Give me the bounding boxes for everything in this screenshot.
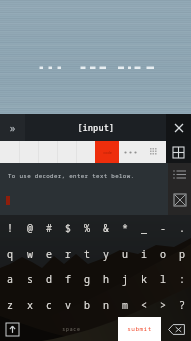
button[interactable]: Dot grid [142, 141, 166, 163]
button[interactable]: w [20, 241, 39, 266]
button[interactable]: _ [134, 215, 153, 241]
button[interactable]: < [134, 292, 153, 317]
staticText: $ [65, 221, 71, 235]
staticText: - [160, 221, 166, 235]
button[interactable]: ! [0, 215, 20, 241]
button[interactable]: submit [118, 317, 161, 341]
staticText: [input] [77, 122, 115, 133]
button[interactable]: - [153, 215, 172, 241]
staticText: p [179, 247, 185, 261]
staticText: ! [7, 221, 13, 235]
button[interactable]: g [77, 266, 96, 292]
button[interactable]: & [96, 215, 115, 241]
staticText: > [160, 298, 166, 312]
button[interactable]: n [96, 292, 115, 317]
staticText: z [7, 298, 13, 312]
staticText: g [84, 272, 90, 286]
staticText: @ [27, 221, 33, 235]
button[interactable]: List [168, 163, 191, 185]
button[interactable]: e [39, 241, 58, 266]
staticText: ? [179, 298, 185, 312]
button[interactable]: r [58, 241, 77, 266]
button[interactable]: More options [119, 141, 142, 163]
button[interactable]: Backspace [161, 317, 191, 341]
staticText: . [179, 221, 185, 235]
staticText: i [141, 247, 147, 261]
button[interactable]: h [96, 266, 115, 292]
button[interactable]: code [95, 141, 119, 163]
button[interactable]: Clear text [168, 185, 191, 215]
staticText: o [160, 247, 166, 261]
button[interactable]: Close [166, 114, 191, 141]
staticText: j [122, 272, 128, 286]
staticText: a [7, 272, 13, 286]
button[interactable]: z [0, 292, 20, 317]
button[interactable]: f [58, 266, 77, 292]
button[interactable]: Expand panel [0, 114, 25, 141]
staticText: < [141, 298, 147, 312]
button[interactable]: l [153, 266, 172, 292]
button[interactable]: m [115, 292, 134, 317]
button[interactable]: a [0, 266, 20, 292]
staticText: h [103, 272, 109, 286]
staticText: e [46, 247, 52, 261]
staticText: b [84, 298, 90, 312]
button[interactable]: space [25, 317, 118, 341]
staticText: f [65, 272, 71, 286]
button[interactable] [0, 185, 168, 215]
staticText: k [141, 272, 147, 286]
button[interactable]: Grid layout [166, 141, 191, 163]
button[interactable]: : [172, 266, 191, 292]
staticText: c [46, 298, 52, 312]
staticText: y [103, 247, 109, 261]
staticText: v [65, 298, 71, 312]
button[interactable]: y [96, 241, 115, 266]
button[interactable]: p [172, 241, 191, 266]
button[interactable]: * [115, 215, 134, 241]
staticText: submit [127, 325, 152, 333]
button[interactable]: c [39, 292, 58, 317]
button[interactable]: % [77, 215, 96, 241]
button[interactable]: j [115, 266, 134, 292]
staticText: & [103, 221, 109, 235]
button[interactable]: o [153, 241, 172, 266]
button[interactable]: t [77, 241, 96, 266]
staticText: s [27, 272, 33, 286]
button[interactable]: Shift [0, 317, 25, 341]
staticText: w [27, 247, 33, 261]
staticText: » [9, 120, 16, 135]
button[interactable]: s [20, 266, 39, 292]
button[interactable]: ? [172, 292, 191, 317]
staticText: r [65, 247, 71, 261]
button[interactable]: $ [58, 215, 77, 241]
button[interactable]: > [153, 292, 172, 317]
button[interactable]: v [58, 292, 77, 317]
button[interactable]: k [134, 266, 153, 292]
button[interactable]: @ [20, 215, 39, 241]
button[interactable]: i [134, 241, 153, 266]
button[interactable]: x [20, 292, 39, 317]
staticText: % [84, 221, 90, 235]
button[interactable]: q [0, 241, 20, 266]
staticText: n [103, 298, 109, 312]
staticText: code [103, 150, 112, 155]
staticText: # [46, 221, 52, 235]
staticText: space [62, 326, 81, 333]
staticText: m [122, 298, 128, 312]
button[interactable]: b [77, 292, 96, 317]
button[interactable]: . [172, 215, 191, 241]
button[interactable]: # [39, 215, 58, 241]
staticText: d [46, 272, 52, 286]
staticText: x [27, 298, 33, 312]
button[interactable]: u [115, 241, 134, 266]
staticText: u [122, 247, 128, 261]
staticText: t [84, 247, 90, 261]
button[interactable]: d [39, 266, 58, 292]
staticText: l [160, 272, 166, 286]
staticText: _ [141, 221, 147, 235]
